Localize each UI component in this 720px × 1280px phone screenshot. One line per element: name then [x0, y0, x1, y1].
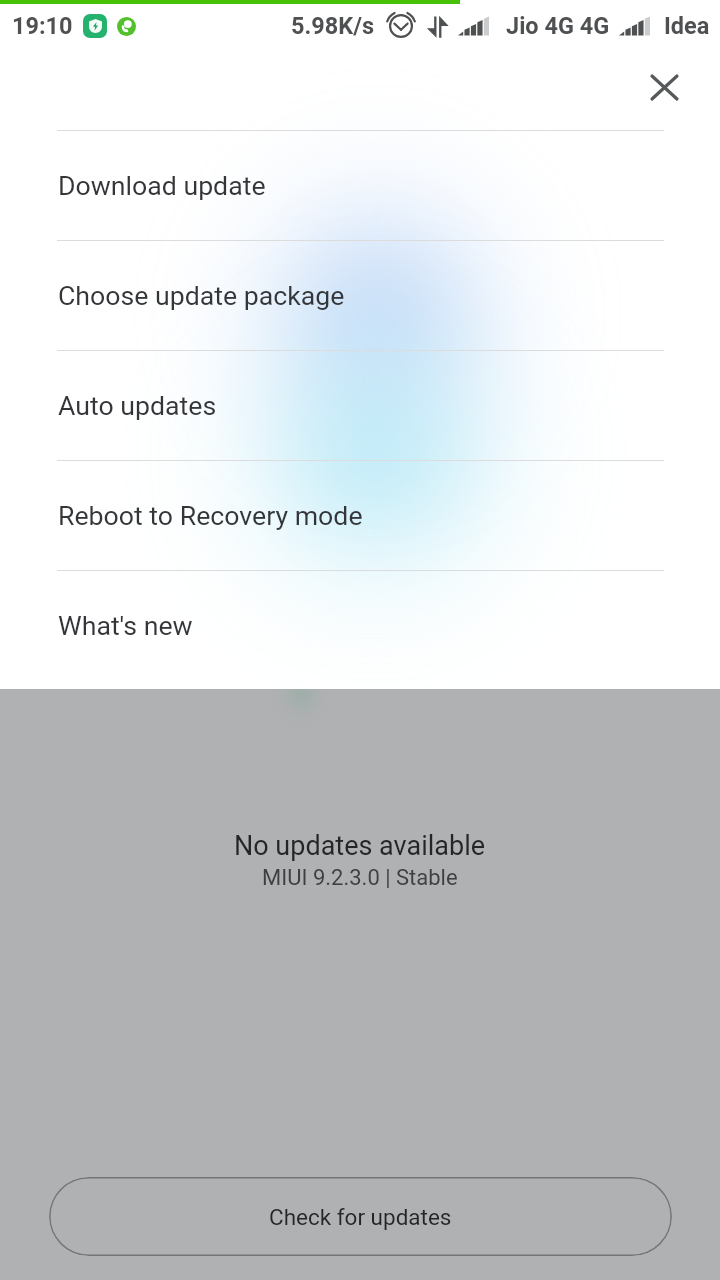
staticText: Download update [58, 170, 266, 201]
staticText: Reboot to Recovery mode [58, 500, 363, 531]
staticText: Idea [664, 12, 710, 40]
staticText: What's new [58, 610, 193, 641]
staticText: 19:10 [12, 12, 73, 40]
button[interactable]: Download update [0, 131, 720, 240]
button[interactable]: Check for updates [49, 1177, 672, 1256]
staticText: Jio 4G 4G [506, 12, 610, 40]
button[interactable]: Auto updates [0, 351, 720, 460]
button[interactable]: What's new [0, 571, 720, 680]
staticText: Choose update package [58, 280, 345, 311]
staticText: 5.98K/s [291, 12, 375, 40]
staticText: Auto updates [58, 390, 217, 421]
staticText: Check for updates [269, 1204, 452, 1230]
button[interactable]: Choose update package [0, 241, 720, 350]
button[interactable]: Reboot to Recovery mode [0, 461, 720, 570]
staticText: MIUI 9.2.3.0 | Stable [262, 865, 458, 891]
staticText: No updates available [234, 830, 486, 862]
button[interactable]: Close [633, 56, 695, 118]
